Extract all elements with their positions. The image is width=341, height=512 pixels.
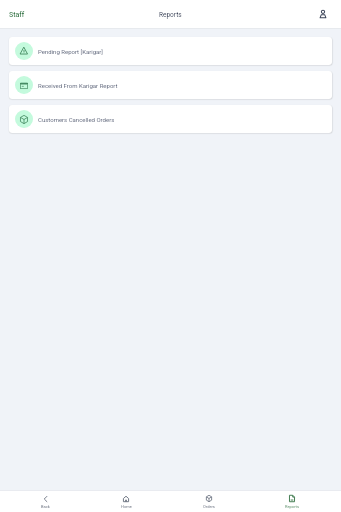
staticText: Received From Karigar Report [38,82,118,89]
button[interactable]: Home [86,491,166,512]
staticText: Pending Report [Karigar] [38,48,103,55]
staticText: Back [41,504,50,509]
staticText: Staff [9,11,25,19]
staticText: Home [121,504,132,509]
button[interactable]: Pending Report [Karigar] [9,37,332,65]
button[interactable]: Reports [251,491,333,512]
staticText: Reports [285,504,299,509]
button[interactable]: Back [4,491,87,512]
staticText: Reports [159,11,182,19]
button[interactable]: Account [316,7,330,21]
button[interactable]: Orders [167,491,250,512]
staticText: Orders [203,504,215,509]
staticText: Customers Cancelled Orders [38,116,115,123]
button[interactable]: Customers Cancelled Orders [9,105,332,133]
button[interactable]: Received From Karigar Report [9,71,332,99]
